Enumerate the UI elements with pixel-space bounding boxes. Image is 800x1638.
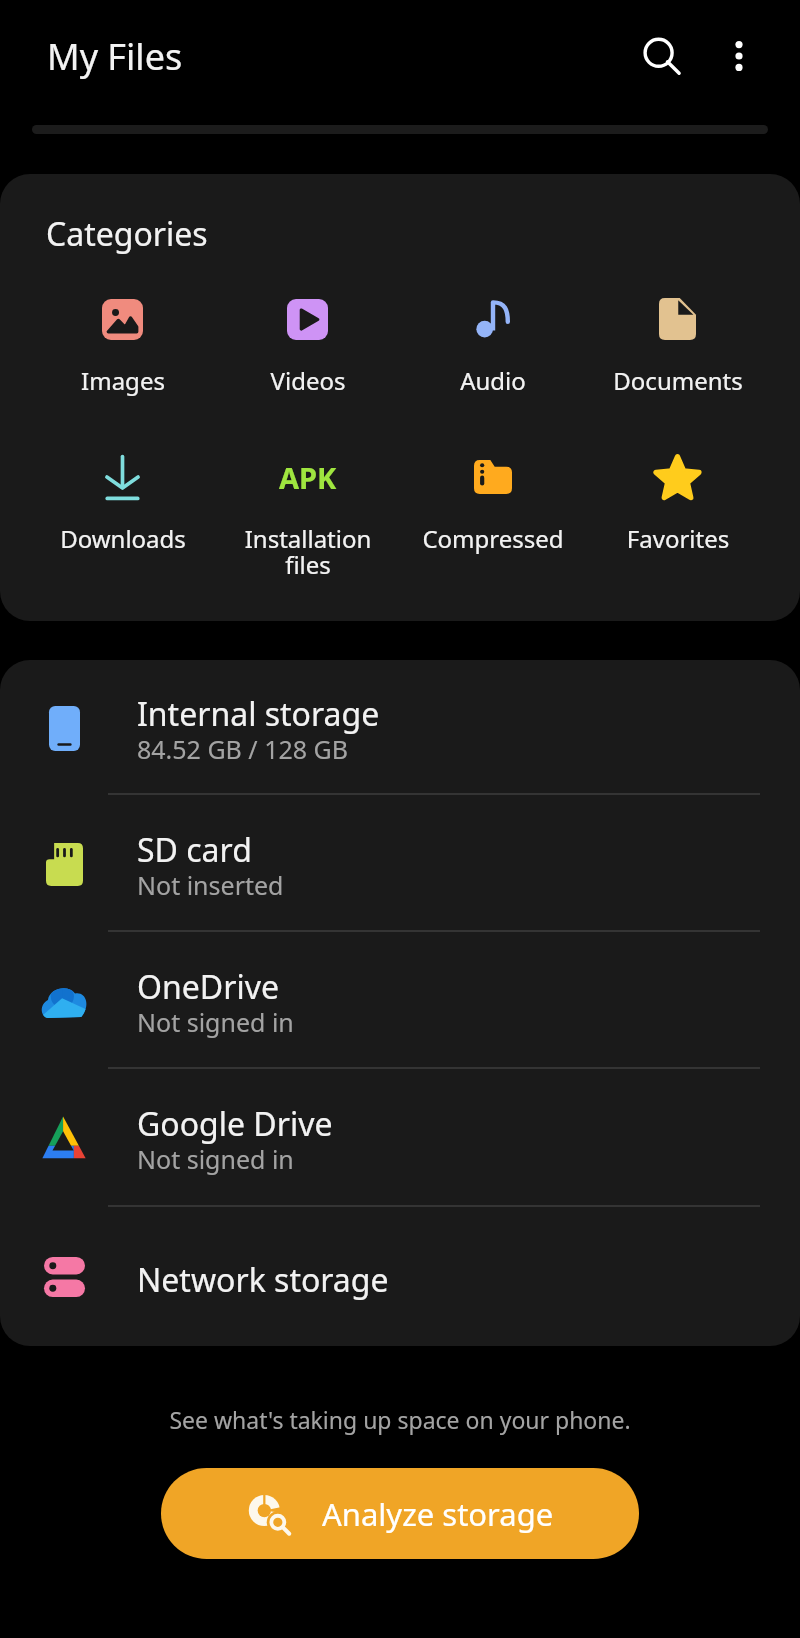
button[interactable]: Audio [400,294,585,397]
staticText: Videos [232,364,384,397]
staticText: Internal storage [137,692,380,736]
staticText: Not signed in [137,1005,294,1039]
staticText: APK [279,458,337,497]
button[interactable]: Downloads [30,452,215,555]
button[interactable]: Images [30,294,215,397]
button[interactable]: Internal storage [0,660,800,795]
staticText: Installation files [232,522,384,581]
staticText: Network storage [137,1258,389,1302]
staticText: My Files [47,32,183,81]
staticText: Audio [417,364,569,397]
staticText: Not signed in [137,1142,294,1176]
button[interactable]: APK [215,452,400,581]
button[interactable]: Network storage [0,1207,800,1346]
button[interactable]: Documents [585,294,770,397]
staticText: Compressed [417,522,569,555]
staticText: Downloads [47,522,199,555]
staticText: SD card [137,828,252,872]
button[interactable]: More options [697,14,781,98]
staticText: Not inserted [137,868,284,902]
staticText: Analyze storage [322,1493,554,1535]
button[interactable]: OneDrive [0,932,800,1069]
button[interactable]: Search [619,14,703,98]
button[interactable]: Videos [215,294,400,397]
button[interactable]: Compressed [400,452,585,555]
button[interactable]: Google Drive [0,1069,800,1207]
staticText: OneDrive [137,965,279,1009]
staticText: See what's taking up space on your phone… [0,1404,800,1435]
staticText: Google Drive [137,1102,333,1146]
staticText: Documents [602,364,754,397]
button[interactable]: Favorites [585,452,770,555]
button[interactable]: SD card [0,795,800,932]
staticText: 84.52 GB / 128 GB [137,732,349,766]
button[interactable]: Analyze storage [161,1468,639,1559]
staticText: Images [47,364,199,397]
staticText: Categories [46,212,208,256]
staticText: Favorites [602,522,754,555]
